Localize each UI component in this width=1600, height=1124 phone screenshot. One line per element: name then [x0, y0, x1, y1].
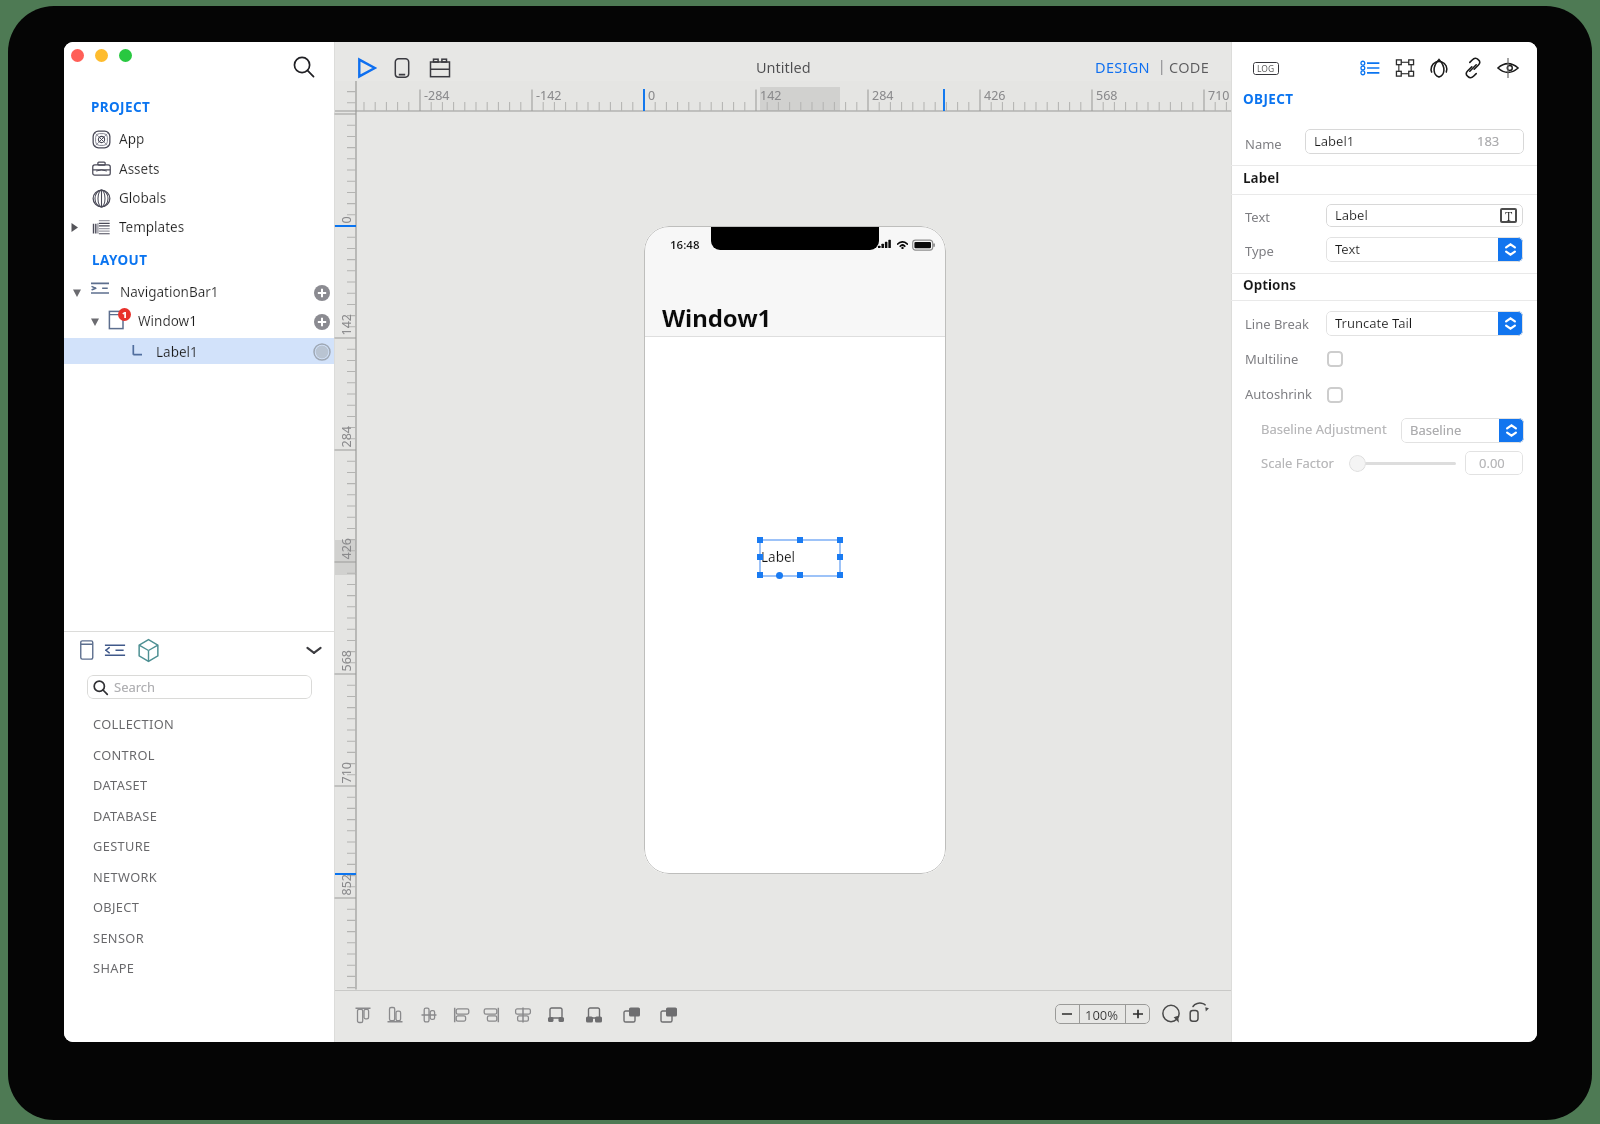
button[interactable]: Preview	[1497, 57, 1519, 79]
staticText: 1	[122, 308, 128, 321]
staticText: Window1	[662, 301, 772, 334]
staticText: SENSOR	[93, 929, 144, 946]
staticText: OBJECT	[1243, 90, 1294, 108]
staticText: GESTURE	[93, 837, 151, 854]
button[interactable]: Properties	[1360, 57, 1382, 79]
staticText: SHAPE	[93, 959, 135, 976]
button[interactable]: Label1	[1305, 129, 1524, 154]
button[interactable]: Add child to Window1	[314, 314, 330, 330]
button[interactable]: Bring forward	[619, 1002, 645, 1028]
button[interactable]: Library	[135, 637, 162, 664]
button[interactable]: CONTROL	[64, 740, 335, 770]
staticText: 100%	[1085, 1006, 1119, 1024]
button[interactable]: Distribute	[581, 1002, 607, 1028]
button[interactable]: Run	[353, 54, 381, 82]
staticText: Label	[1335, 206, 1368, 224]
staticText: LOG	[1257, 63, 1275, 75]
button[interactable]: Align horizontal centre	[510, 1002, 536, 1028]
staticText: CODE	[1169, 57, 1210, 77]
button[interactable]: NavigationBar1	[64, 278, 335, 307]
button[interactable]: Zoom out	[1055, 1004, 1079, 1024]
staticText: 426	[337, 537, 352, 559]
button[interactable]: Search project	[290, 53, 318, 81]
button[interactable]: Align top	[350, 1002, 376, 1028]
staticText: 284	[872, 87, 894, 104]
button[interactable]: Align bottom	[382, 1002, 408, 1028]
button[interactable]: CODE	[1169, 56, 1213, 78]
staticText: Label1	[156, 343, 198, 361]
staticText: Type	[1245, 242, 1274, 260]
button[interactable]: Links	[1462, 57, 1484, 79]
button[interactable]: COLLECTION	[64, 709, 335, 739]
staticText: T	[1505, 208, 1513, 223]
button[interactable]: Fill container	[543, 1002, 569, 1028]
button[interactable]: OBJECT	[64, 892, 335, 922]
button[interactable]: Truncate Tail	[1326, 311, 1523, 336]
button[interactable]: Rotate device	[1185, 1000, 1211, 1026]
staticText: LAYOUT	[92, 251, 148, 269]
staticText: Window1	[138, 312, 197, 330]
button[interactable]: Layout	[1394, 57, 1416, 79]
staticText: 183	[1477, 132, 1500, 150]
staticText: NavigationBar1	[120, 283, 219, 301]
staticText: Baseline	[1410, 421, 1462, 439]
button[interactable]: Align left	[449, 1002, 475, 1028]
button[interactable]: DESIGN	[1095, 56, 1151, 78]
button[interactable]: Baseline	[1401, 418, 1524, 443]
staticText: PROJECT	[91, 98, 151, 116]
button[interactable]: Send backward	[656, 1002, 682, 1028]
button[interactable]: Appearance	[1428, 57, 1450, 79]
button[interactable]: Preview on device	[389, 55, 415, 81]
button[interactable]: Comments	[1160, 1003, 1182, 1025]
staticText: 0	[648, 87, 656, 104]
staticText: 568	[1096, 87, 1118, 104]
button[interactable]: Collapse panel	[303, 639, 325, 661]
staticText: 852	[337, 873, 352, 895]
staticText: 0	[337, 215, 352, 223]
staticText: 568	[337, 649, 352, 671]
staticText: 142	[337, 313, 352, 335]
button[interactable]: Pages	[75, 638, 99, 662]
button[interactable]: NETWORK	[64, 862, 335, 892]
button[interactable]: DATABASE	[64, 801, 335, 831]
button[interactable]: DATASET	[64, 770, 335, 800]
button[interactable]: Outline	[103, 638, 127, 662]
button[interactable]: SHAPE	[64, 953, 335, 983]
button[interactable]: GESTURE	[64, 831, 335, 861]
staticText: 16:48	[670, 237, 700, 253]
button[interactable]: Search	[87, 675, 312, 699]
button[interactable]: Templates	[64, 213, 335, 242]
staticText: -142	[536, 87, 562, 104]
button[interactable]: 1	[64, 307, 335, 336]
button[interactable]: Checkbox	[1327, 351, 1343, 367]
button[interactable]: App	[64, 125, 335, 154]
button[interactable]: Log	[1253, 62, 1279, 75]
button[interactable]: Label	[1326, 204, 1523, 227]
staticText: Scale Factor	[1261, 454, 1334, 472]
button[interactable]: Globals	[64, 184, 335, 213]
button[interactable]: Scale factor	[1349, 455, 1366, 472]
button[interactable]: 0.00	[1465, 451, 1523, 475]
staticText: CONTROL	[93, 746, 155, 763]
button[interactable]: Zoom in	[1126, 1004, 1150, 1024]
button[interactable]: Components	[427, 55, 453, 81]
staticText: 710	[1208, 87, 1230, 104]
staticText: |	[1158, 57, 1166, 75]
button[interactable]	[64, 338, 335, 364]
button[interactable]: Align vertical centre	[416, 1002, 442, 1028]
button[interactable]: Add child to NavigationBar1	[314, 285, 330, 301]
button[interactable]: Align right	[478, 1002, 504, 1028]
staticText: Options	[1243, 276, 1297, 294]
staticText: 710	[337, 761, 352, 783]
staticText: Multiline	[1245, 350, 1299, 368]
staticText: OBJECT	[93, 898, 140, 915]
staticText: Truncate Tail	[1335, 314, 1413, 332]
button[interactable]: Assets	[64, 155, 335, 184]
staticText: NETWORK	[93, 868, 158, 885]
staticText: DESIGN	[1095, 57, 1150, 77]
button[interactable]: Text	[1326, 237, 1523, 262]
staticText: Templates	[119, 218, 185, 236]
button[interactable]: SENSOR	[64, 923, 335, 953]
staticText: COLLECTION	[93, 715, 175, 732]
button[interactable]: Checkbox	[1327, 387, 1343, 403]
